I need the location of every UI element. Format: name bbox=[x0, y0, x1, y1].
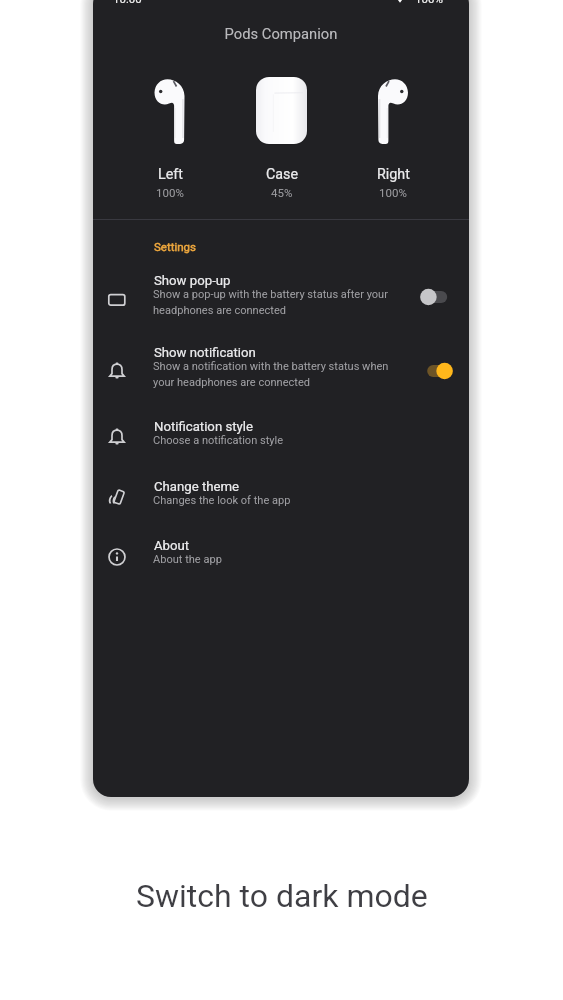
button[interactable]: Notification style bbox=[93, 412, 469, 462]
staticText: About bbox=[154, 538, 190, 553]
staticText: Left bbox=[158, 166, 183, 183]
staticText: Changes the look of the app bbox=[153, 494, 291, 507]
staticText: Notification style bbox=[154, 419, 253, 434]
staticText: Switch to dark mode bbox=[136, 877, 428, 915]
button[interactable]: Show notification bbox=[93, 338, 469, 400]
button[interactable]: Turn off bbox=[420, 359, 454, 383]
staticText: 100% bbox=[379, 186, 407, 199]
button[interactable]: Show pop-up bbox=[93, 266, 469, 328]
staticText: Show a notification with the battery sta… bbox=[153, 360, 389, 373]
staticText: headphones are connected bbox=[153, 304, 287, 317]
staticText: 10:00 bbox=[113, 0, 142, 5]
button[interactable]: Turn on bbox=[420, 285, 454, 309]
staticText: Choose a notification style bbox=[153, 434, 284, 447]
button[interactable]: About bbox=[93, 531, 469, 581]
staticText: Pods Companion bbox=[93, 25, 469, 42]
staticText: 100% bbox=[156, 186, 184, 199]
button[interactable]: Change theme bbox=[93, 472, 469, 522]
staticText: 45% bbox=[271, 186, 293, 199]
staticText: Right bbox=[377, 166, 410, 183]
staticText: 100% bbox=[415, 0, 443, 5]
staticText: Show a pop-up with the battery status af… bbox=[153, 288, 388, 301]
staticText: About the app bbox=[153, 553, 222, 566]
staticText: Change theme bbox=[154, 479, 240, 494]
staticText: Settings bbox=[154, 240, 196, 253]
staticText: Show pop-up bbox=[154, 273, 231, 288]
staticText: Show notification bbox=[154, 345, 256, 360]
staticText: your headphones are connected bbox=[153, 376, 311, 389]
staticText: Case bbox=[266, 166, 299, 183]
